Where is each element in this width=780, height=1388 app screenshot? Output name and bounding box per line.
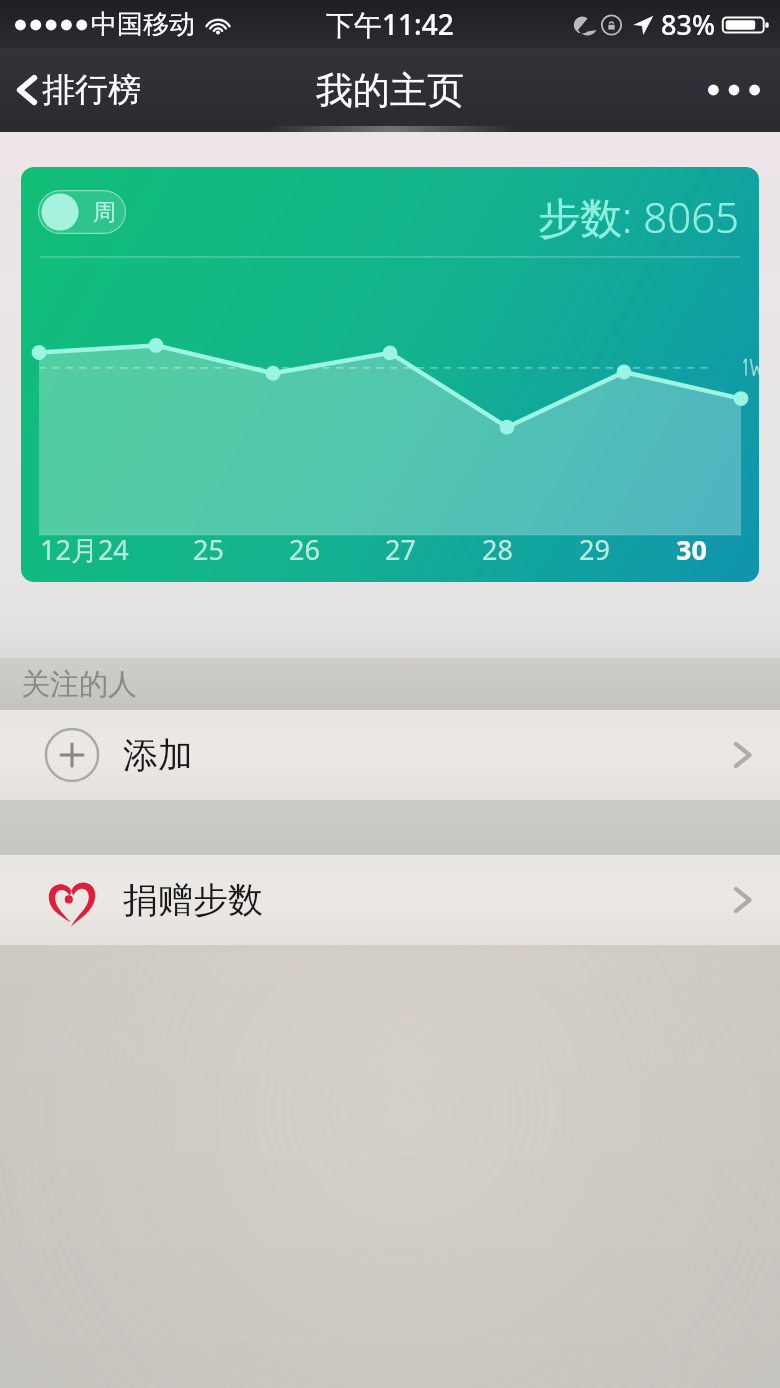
staticText: 30 [676, 531, 707, 568]
button[interactable]: 周 [21, 167, 759, 582]
staticText: 26 [289, 531, 320, 568]
staticText: 步数: 8065 [538, 188, 740, 245]
staticText: 83% [661, 6, 715, 43]
staticText: 关注的人 [21, 666, 137, 703]
staticText: 28 [482, 531, 513, 568]
button[interactable]: 周 [38, 190, 126, 234]
staticText: 排行榜 [42, 69, 141, 111]
staticText: 27 [385, 531, 416, 568]
other: Open 添加 [728, 736, 758, 774]
button[interactable]: 添加 [0, 710, 780, 800]
staticText: 25 [193, 531, 224, 568]
staticText: 中国移动 [91, 8, 195, 41]
staticText: 12月24 [40, 531, 129, 568]
staticText: 29 [579, 531, 610, 568]
staticText: 我的主页 [316, 67, 464, 114]
button[interactable]: More options [688, 62, 780, 118]
staticText: 下午11:42 [326, 5, 454, 43]
button[interactable]: 捐赠步数 [0, 855, 780, 945]
staticText: 添加 [123, 733, 193, 777]
staticText: 捐赠步数 [123, 878, 263, 922]
other: Open 捐赠步数 [728, 881, 758, 919]
button[interactable]: 排行榜 [0, 59, 157, 121]
staticText: 周 [93, 198, 116, 227]
